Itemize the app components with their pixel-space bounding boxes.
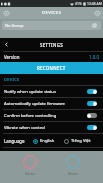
button[interactable]: Account xyxy=(91,7,103,19)
staticText: 41% xyxy=(75,1,82,6)
button[interactable]: Notify when update status xyxy=(4,86,97,97)
staticText: Device xyxy=(25,172,35,176)
button[interactable]: Confirm before controlling xyxy=(4,110,97,121)
staticText: Tiếng Việt xyxy=(71,138,91,144)
button[interactable]: Automatically update firmware xyxy=(4,98,97,109)
button[interactable]: Back xyxy=(0,38,12,50)
staticText: No Group xyxy=(5,23,24,28)
button[interactable]: Open navigation menu xyxy=(0,7,12,19)
staticText: Version xyxy=(4,54,20,60)
button[interactable]: RECONNECT xyxy=(0,62,103,74)
staticText: RECONNECT xyxy=(37,65,66,71)
staticText: DEVICES xyxy=(42,10,62,16)
button[interactable]: Vibrate when control xyxy=(4,122,97,133)
staticText: Device xyxy=(68,172,78,176)
staticText: 12:46 AM xyxy=(87,1,102,6)
staticText: SETTINGS xyxy=(40,42,63,48)
staticText: 1.0.0 xyxy=(89,54,99,60)
staticText: Vibrate when control xyxy=(4,125,45,131)
button[interactable]: Tiếng Việt xyxy=(64,138,91,144)
staticText: DEVICE xyxy=(4,77,20,82)
button[interactable]: English xyxy=(33,138,55,144)
staticText: English xyxy=(40,138,55,144)
button[interactable]: Group settings xyxy=(92,23,97,28)
staticText: Notify when update status xyxy=(4,89,56,95)
staticText: Language xyxy=(4,138,25,144)
staticText: Automatically update firmware xyxy=(4,101,65,107)
button[interactable]: No Group xyxy=(2,21,101,30)
button[interactable]: Device xyxy=(8,149,51,181)
button[interactable]: Device xyxy=(51,149,95,181)
staticText: Confirm before controlling xyxy=(4,113,57,119)
